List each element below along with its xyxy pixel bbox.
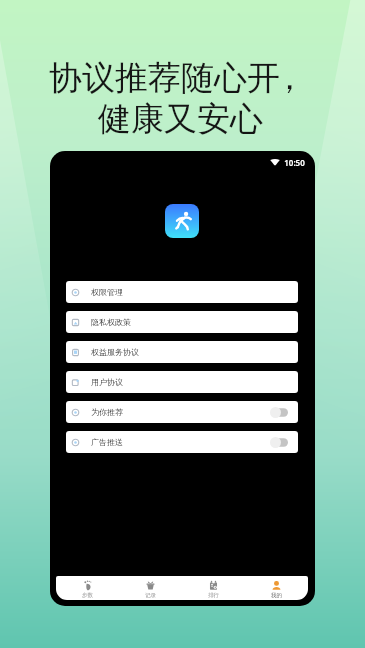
staticText: 记录 (145, 592, 156, 599)
button[interactable]: 隐私权政策 (66, 311, 298, 333)
staticText: 用户协议 (91, 377, 123, 387)
staticText: 协议推荐随心开 (49, 57, 280, 99)
button[interactable]: 排行 (182, 576, 245, 600)
staticText: 权益服务协议 (91, 347, 139, 357)
button[interactable]: 记录 (119, 576, 182, 600)
staticText: 健康又安心 (98, 98, 263, 140)
staticText: 为你推荐 (91, 407, 123, 417)
button[interactable]: 权限管理 (66, 281, 298, 303)
button[interactable]: 为你推荐 (66, 401, 298, 423)
button[interactable]: 权益服务协议 (66, 341, 298, 363)
button[interactable]: 步数 (56, 576, 119, 600)
staticText: 广告推送 (91, 437, 123, 447)
button[interactable]: 我的 (245, 576, 308, 600)
staticText: 隐私权政策 (91, 317, 131, 327)
staticText: 我的 (271, 592, 282, 599)
staticText: 排行 (208, 592, 219, 599)
button[interactable]: Toggle 广告推送 (270, 437, 288, 448)
button[interactable]: Toggle 为你推荐 (270, 407, 288, 418)
staticText: 10:50 (284, 157, 305, 166)
staticText: 权限管理 (91, 287, 123, 297)
staticText: 步数 (82, 592, 93, 599)
staticText: ， (273, 57, 306, 99)
button[interactable]: 用户协议 (66, 371, 298, 393)
button[interactable]: 广告推送 (66, 431, 298, 453)
